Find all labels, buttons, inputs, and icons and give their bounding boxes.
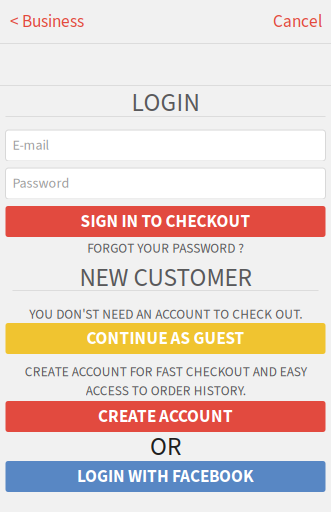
button[interactable]: SIGN IN TO CHECKOUT [5,206,325,237]
staticText: Password [12,173,69,193]
staticText: OR [150,429,181,465]
staticText: < Business [10,9,84,34]
staticText: Cancel [273,9,322,34]
staticText: YOU DON'ST NEED AN ACCOUNT TO CHECK OUT. [29,305,302,324]
button[interactable]: CREATE ACCOUNT [5,401,325,432]
button[interactable]: LOGIN WITH FACEBOOK [5,461,325,492]
button[interactable]: Password [5,168,325,199]
button[interactable]: CONTINUE AS GUEST [5,323,325,354]
staticText: CREATE ACCOUNT FOR FAST CHECKOUT AND EAS… [24,362,306,400]
staticText: FORGOT YOUR PASSWORD ? [87,239,244,258]
staticText: LOGIN WITH FACEBOOK [77,464,254,489]
staticText: CONTINUE AS GUEST [86,326,244,351]
staticText: SIGN IN TO CHECKOUT [80,209,250,234]
button[interactable]: FORGOT YOUR PASSWORD ? [5,241,325,256]
button[interactable]: Cancel [273,0,331,43]
button[interactable]: < Business [0,0,84,43]
staticText: E-mail [12,135,49,155]
staticText: CREATE ACCOUNT [98,404,233,429]
staticText: LOGIN [131,85,199,121]
staticText: NEW CUSTOMER [79,260,251,296]
button[interactable]: E-mail [5,130,325,161]
